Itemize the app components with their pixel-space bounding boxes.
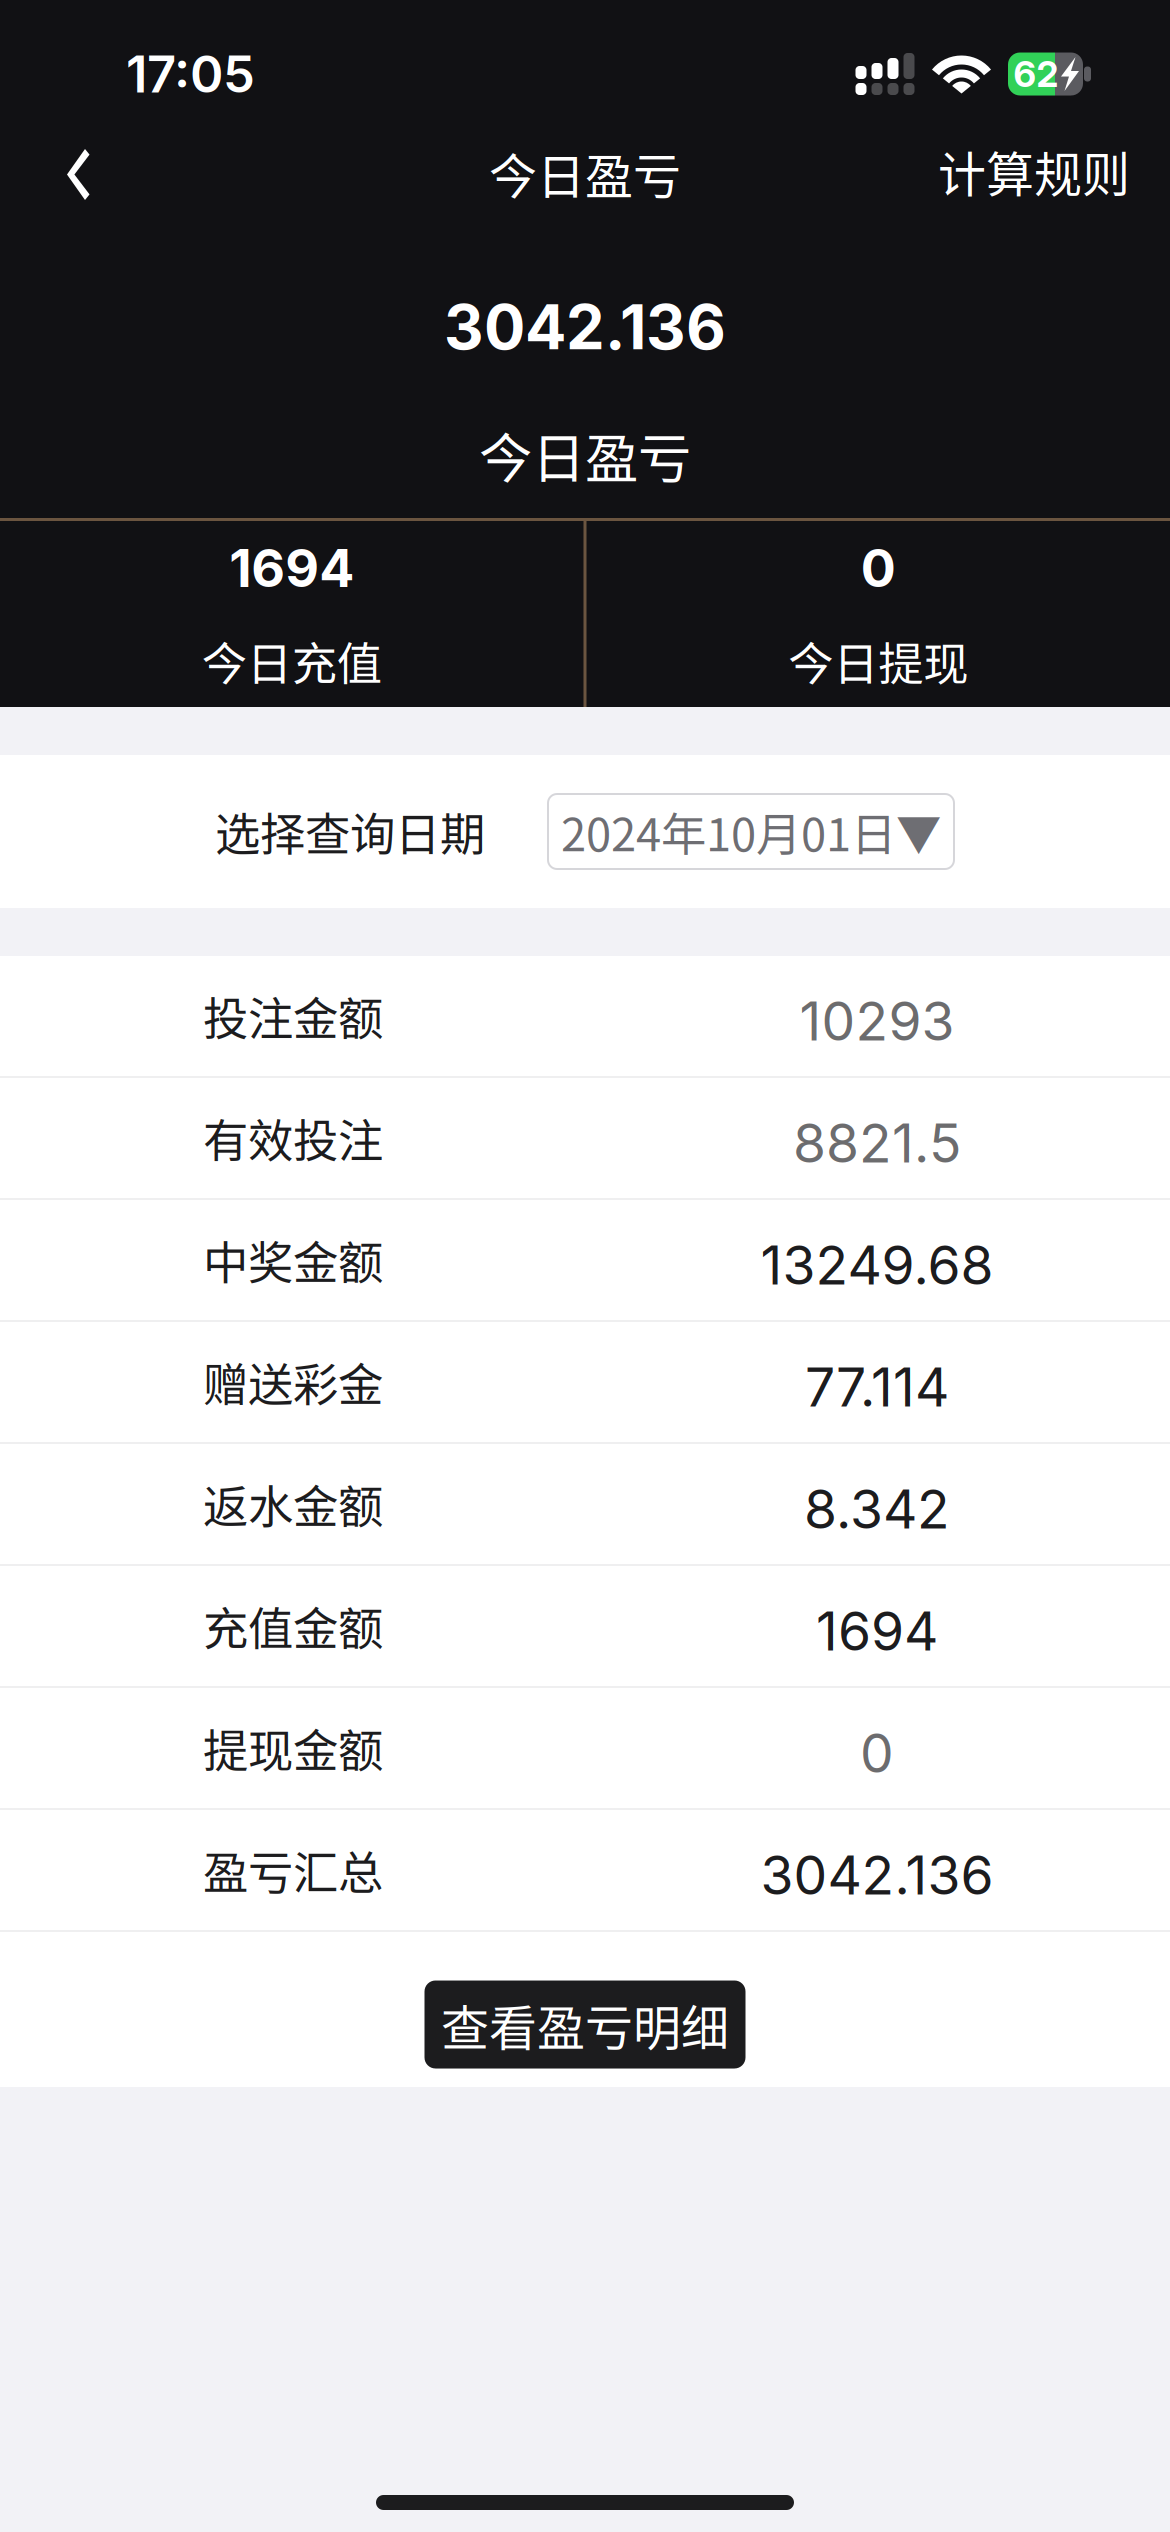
staticText: 计算规则 — [938, 136, 1130, 206]
staticText: 查看盈亏明细 — [441, 1990, 729, 2059]
staticText: 中奖金额 — [203, 1227, 383, 1293]
staticText: 今日盈亏 — [479, 416, 691, 494]
staticText: 1694 — [229, 536, 354, 599]
button[interactable]: 查看盈亏明细 — [424, 1950, 745, 2068]
staticText: 0 — [860, 1721, 894, 1785]
staticText: 充值金额 — [203, 1593, 383, 1659]
staticText: 8.342 — [804, 1477, 950, 1541]
staticText: 0 — [861, 536, 896, 599]
staticText: 盈亏汇总 — [203, 1837, 383, 1903]
staticText: 投注金额 — [203, 983, 383, 1049]
staticText: 8821.5 — [793, 1111, 961, 1175]
staticText: 1694 — [816, 1599, 938, 1663]
staticText: 有效投注 — [203, 1105, 383, 1171]
staticText: 3042.136 — [760, 1843, 993, 1907]
staticText: 提现金额 — [203, 1715, 383, 1781]
staticText: 返水金额 — [203, 1471, 383, 1537]
staticText: 10293 — [799, 989, 954, 1053]
button[interactable]: 2024年10月01日▼ — [548, 794, 954, 869]
button[interactable]: 计算规则 — [904, 120, 1170, 232]
staticText: 77.114 — [805, 1355, 949, 1419]
staticText: 今日盈亏 — [489, 138, 681, 208]
staticText: 3042.136 — [444, 290, 726, 364]
staticText: 赠送彩金 — [203, 1349, 383, 1415]
button[interactable]: 返回 — [0, 128, 140, 224]
staticText: 选择查询日期 — [215, 799, 485, 864]
staticText: 13249.68 — [760, 1233, 993, 1297]
staticText: 2024年10月01日▼ — [561, 799, 941, 864]
staticText: 今日提现 — [788, 628, 968, 694]
staticText: 17:05 — [126, 43, 255, 105]
staticText: 62 — [1013, 52, 1058, 96]
staticText: 今日充值 — [202, 628, 382, 694]
